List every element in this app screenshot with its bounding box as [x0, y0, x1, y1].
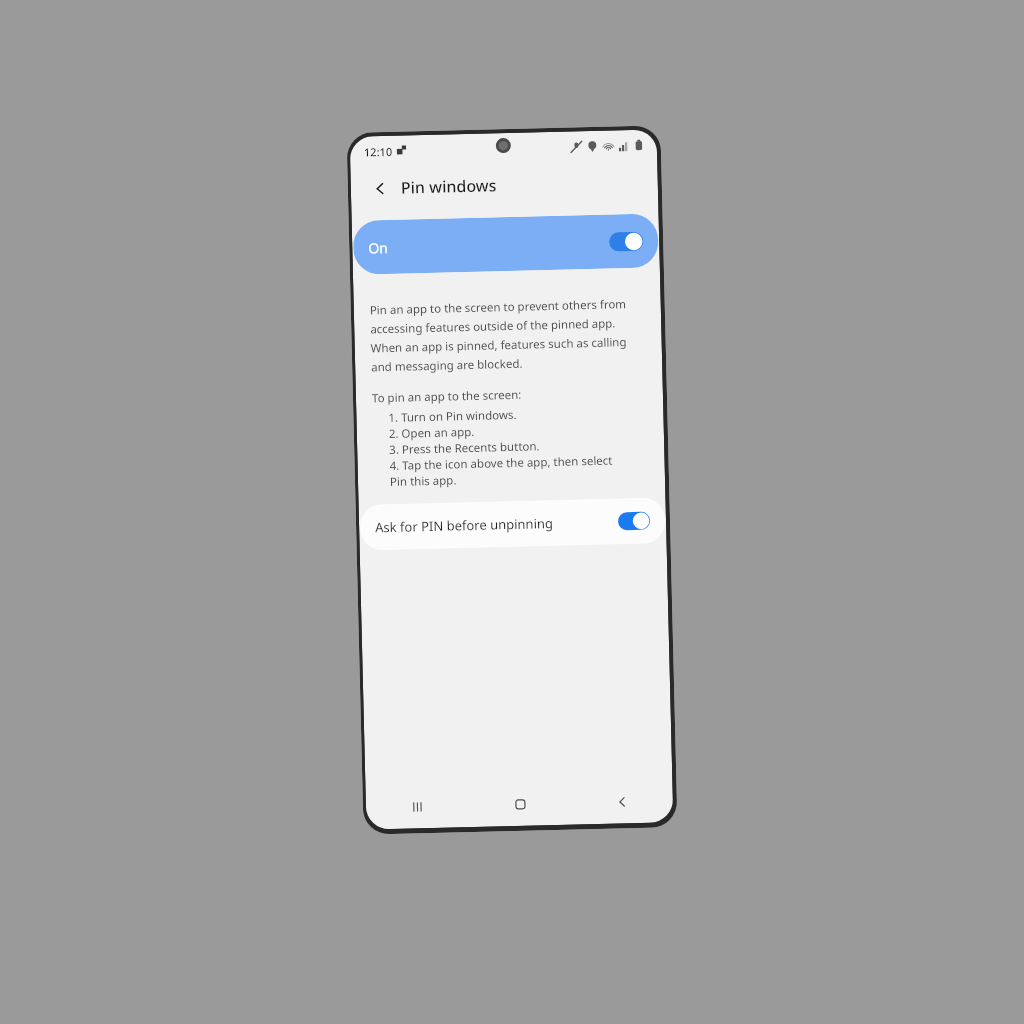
staticText: To pin an app to the screen:	[372, 387, 522, 406]
staticText: 3. Press the Recents button.	[389, 438, 540, 458]
staticText: 2. Open an app.	[389, 424, 475, 442]
staticText: Pin windows	[401, 174, 497, 199]
staticText: 1. Turn on Pin windows.	[388, 407, 518, 426]
staticText: 4. Tap the icon above the app, then sele…	[389, 452, 613, 474]
staticText: Pin an app to the screen to prevent othe…	[370, 296, 646, 374]
staticText: On	[368, 238, 389, 257]
staticText: Pin this app.	[390, 472, 457, 490]
button[interactable]: Home	[468, 781, 571, 827]
staticText: 12:10	[364, 144, 393, 159]
staticText: Ask for PIN before unpinning	[375, 514, 553, 536]
button[interactable]: Ask for PIN before unpinning	[360, 497, 666, 551]
button[interactable]: Back	[570, 778, 673, 825]
button[interactable]: Recents	[365, 783, 469, 830]
button[interactable]: On	[353, 213, 659, 275]
button[interactable]: Back	[364, 173, 395, 203]
